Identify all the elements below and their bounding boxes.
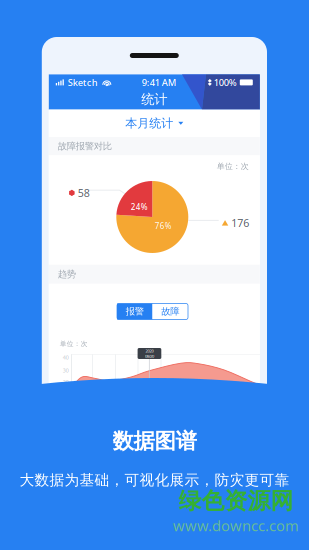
staticText: 单位：次 xyxy=(217,161,249,171)
staticText: 报警 xyxy=(126,306,144,317)
staticText: www.downcc.com xyxy=(173,516,299,535)
staticText: 76% xyxy=(155,221,172,231)
staticText: 20 xyxy=(63,378,69,385)
button[interactable]: 报警 xyxy=(117,303,152,319)
staticText: 08/20 xyxy=(145,353,154,359)
staticText: 单位：次 xyxy=(60,340,88,348)
staticText: Sketch xyxy=(68,76,98,89)
staticText: 24% xyxy=(131,202,148,212)
staticText: 故障 xyxy=(161,306,179,317)
staticText: 9:41 AM xyxy=(142,76,177,89)
staticText: 40 xyxy=(63,354,69,361)
staticText: 30 xyxy=(63,367,69,374)
staticText: 2020 xyxy=(145,348,153,353)
button[interactable]: 本月统计 xyxy=(49,110,260,137)
staticText: 本月统计 xyxy=(125,116,173,131)
staticText: 58 xyxy=(78,186,90,200)
staticText: 故障报警对比 xyxy=(58,140,112,152)
staticText: 100% xyxy=(214,76,237,89)
staticText: 数据图谱 xyxy=(112,428,196,454)
staticText: 176 xyxy=(231,216,249,230)
staticText: 统计 xyxy=(141,91,167,108)
staticText: 趋势 xyxy=(58,268,76,280)
staticText: 大数据为基础，可视化展示，防灾更可靠 xyxy=(19,471,289,489)
button[interactable]: 故障 xyxy=(152,303,188,319)
staticText: 绿色资源网 xyxy=(178,487,293,515)
